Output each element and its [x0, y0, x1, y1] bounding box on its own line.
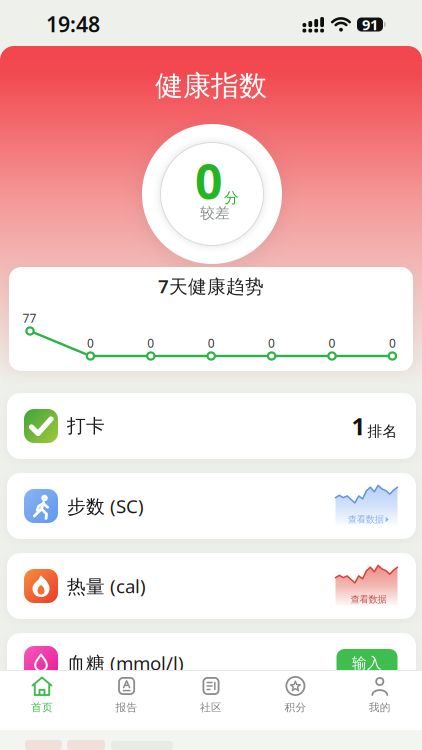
staticText: 报告 [116, 701, 138, 714]
staticText: 0 [389, 335, 396, 351]
button[interactable]: 血糖 (mmol/l) [7, 633, 416, 699]
staticText: 查看数据 [350, 594, 386, 605]
staticText: 0 [328, 335, 335, 351]
button[interactable]: 积分 [253, 670, 337, 726]
staticText: 0 [87, 335, 94, 351]
staticText: 查看数据 [348, 514, 384, 525]
button[interactable]: 输入 [336, 649, 397, 677]
staticText: 热量 (cal) [67, 574, 146, 598]
staticText: 0 [268, 335, 275, 351]
staticText: 77 [22, 310, 36, 326]
staticText: 血糖 (mmol/l) [67, 651, 184, 675]
staticText: 我的 [369, 701, 391, 714]
staticText: 0 [195, 149, 222, 213]
button[interactable]: 首页 [0, 670, 84, 726]
button[interactable]: 热量 (cal) [7, 553, 416, 619]
staticText: 19:48 [46, 10, 100, 38]
button[interactable]: 报告 [85, 670, 169, 726]
button[interactable]: 打卡 [7, 393, 416, 459]
staticText: 首页 [31, 701, 53, 714]
staticText: 输入 [352, 654, 382, 672]
staticText: 91 [362, 15, 378, 34]
staticText: 较差 [200, 204, 230, 222]
staticText: 分 [224, 189, 239, 207]
staticText: 7天健康趋势 [158, 274, 264, 298]
staticText: 排名 [367, 422, 397, 440]
staticText: 0 [208, 335, 215, 351]
button[interactable]: 社区 [169, 670, 253, 726]
staticText: 积分 [284, 701, 306, 714]
staticText: 健康指数 [155, 69, 267, 103]
staticText: 社区 [200, 701, 222, 714]
button[interactable]: 步数 (SC) [7, 473, 416, 539]
button[interactable]: 我的 [338, 670, 422, 726]
staticText: 0 [147, 335, 154, 351]
staticText: 步数 (SC) [67, 494, 144, 518]
staticText: 1 [351, 410, 365, 442]
staticText: 打卡 [67, 414, 105, 437]
